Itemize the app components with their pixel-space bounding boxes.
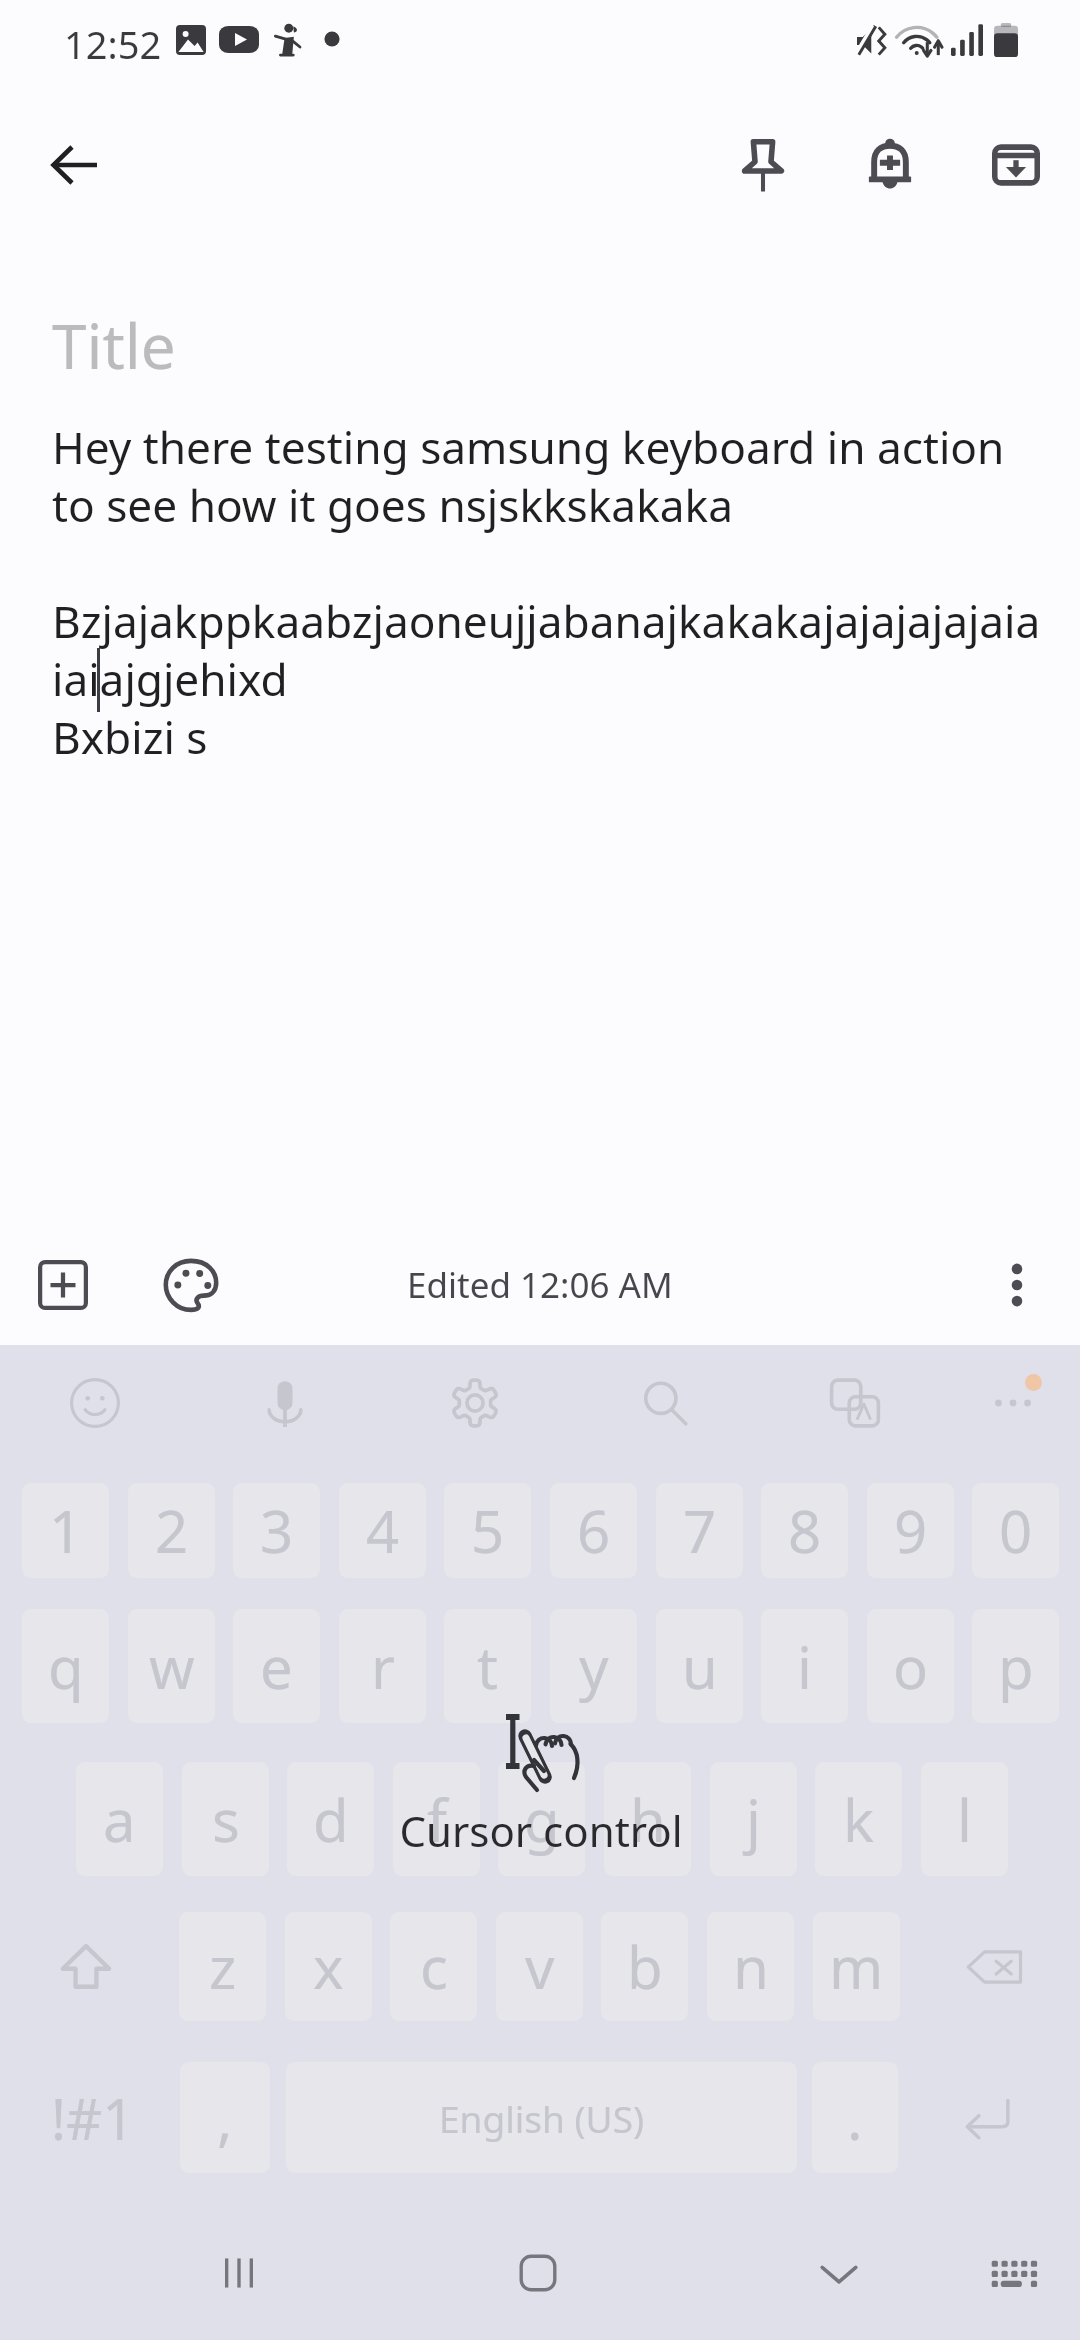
button[interactable]: g: [498, 1762, 585, 1876]
button[interactable]: f: [393, 1762, 480, 1876]
staticText: s: [212, 1780, 240, 1859]
button[interactable]: Enter: [919, 2062, 1055, 2173]
staticText: c: [420, 1927, 448, 2006]
button[interactable]: Archive: [968, 117, 1064, 213]
staticText: 1: [49, 1491, 83, 1570]
staticText: w: [149, 1627, 195, 1706]
button[interactable]: k: [815, 1762, 902, 1876]
staticText: Title: [52, 303, 176, 387]
button[interactable]: m: [813, 1912, 900, 2021]
staticText: ,: [217, 2078, 233, 2157]
staticText: Hey there testing samsung keyboard in ac…: [52, 417, 1052, 767]
button[interactable]: w: [128, 1609, 215, 1723]
button[interactable]: Hide keyboard: [779, 2213, 899, 2333]
staticText: 5: [471, 1491, 505, 1570]
button[interactable]: 7: [656, 1483, 743, 1578]
button[interactable]: j: [710, 1762, 797, 1876]
staticText: d: [313, 1780, 349, 1859]
button[interactable]: o: [867, 1609, 954, 1723]
staticText: 12:52: [64, 18, 162, 70]
staticText: h: [630, 1780, 666, 1859]
button[interactable]: Backspace: [935, 1912, 1055, 2021]
button[interactable]: q: [22, 1609, 109, 1723]
button[interactable]: More: [961, 1351, 1065, 1455]
button[interactable]: Home: [478, 2213, 598, 2333]
button[interactable]: 8: [761, 1483, 848, 1578]
staticText: f: [427, 1780, 447, 1859]
button[interactable]: Switch keyboard: [953, 2213, 1073, 2333]
staticText: l: [957, 1780, 972, 1859]
staticText: q: [48, 1627, 84, 1706]
button[interactable]: s: [182, 1762, 269, 1876]
staticText: k: [843, 1780, 874, 1859]
button[interactable]: x: [285, 1912, 372, 2021]
staticText: .: [847, 2078, 863, 2157]
button[interactable]: b: [601, 1912, 688, 2021]
button[interactable]: i: [761, 1609, 848, 1723]
button[interactable]: Settings: [423, 1351, 527, 1455]
button[interactable]: English (US): [286, 2062, 797, 2173]
button[interactable]: a: [76, 1762, 163, 1876]
button[interactable]: h: [604, 1762, 691, 1876]
button[interactable]: Add content: [20, 1242, 106, 1328]
staticText: j: [746, 1780, 761, 1859]
button[interactable]: t: [444, 1609, 531, 1723]
staticText: x: [313, 1927, 344, 2006]
button[interactable]: Back: [27, 118, 121, 212]
button[interactable]: 6: [550, 1483, 637, 1578]
staticText: u: [682, 1627, 718, 1706]
staticText: r: [371, 1627, 395, 1706]
staticText: 4: [366, 1491, 400, 1570]
button[interactable]: 0: [972, 1483, 1059, 1578]
staticText: Cursor control: [391, 1802, 691, 1859]
button[interactable]: More options: [974, 1242, 1060, 1328]
button[interactable]: Shift: [25, 1912, 146, 2021]
staticText: 0: [999, 1491, 1033, 1570]
button[interactable]: 1: [22, 1483, 109, 1578]
staticText: 3: [260, 1491, 294, 1570]
staticText: p: [998, 1627, 1034, 1706]
button[interactable]: !#1: [24, 2062, 162, 2173]
staticText: v: [525, 1927, 555, 2006]
button[interactable]: 4: [339, 1483, 426, 1578]
button[interactable]: Change colour: [148, 1242, 234, 1328]
button[interactable]: Recents: [179, 2213, 299, 2333]
staticText: t: [477, 1627, 498, 1706]
staticText: Edited 12:06 AM: [407, 1261, 673, 1309]
button[interactable]: 5: [444, 1483, 531, 1578]
button[interactable]: p: [972, 1609, 1059, 1723]
button[interactable]: Note body: [0, 270, 1080, 1225]
button[interactable]: e: [233, 1609, 320, 1723]
button[interactable]: u: [656, 1609, 743, 1723]
staticText: !#1: [51, 2080, 135, 2156]
button[interactable]: c: [390, 1912, 477, 2021]
staticText: a: [103, 1780, 136, 1859]
button[interactable]: Voice input: [233, 1351, 337, 1455]
button[interactable]: Emoji: [43, 1351, 147, 1455]
button[interactable]: Search: [613, 1351, 717, 1455]
button[interactable]: d: [287, 1762, 374, 1876]
staticText: English (US): [439, 2093, 645, 2143]
staticText: e: [260, 1627, 293, 1706]
button[interactable]: 2: [128, 1483, 215, 1578]
staticText: o: [893, 1627, 929, 1706]
button[interactable]: 9: [867, 1483, 954, 1578]
staticText: 9: [894, 1491, 928, 1570]
button[interactable]: r: [339, 1609, 426, 1723]
button[interactable]: z: [179, 1912, 266, 2021]
staticText: 2: [155, 1491, 189, 1570]
staticText: n: [733, 1927, 769, 2006]
button[interactable]: 3: [233, 1483, 320, 1578]
button[interactable]: v: [496, 1912, 583, 2021]
staticText: 8: [788, 1491, 822, 1570]
staticText: z: [209, 1927, 237, 2006]
button[interactable]: Translate: [803, 1351, 907, 1455]
button[interactable]: y: [550, 1609, 637, 1723]
button[interactable]: Add reminder: [842, 117, 938, 213]
button[interactable]: Pin note: [715, 117, 811, 213]
staticText: m: [829, 1927, 884, 2006]
button[interactable]: l: [921, 1762, 1008, 1876]
button[interactable]: n: [707, 1912, 794, 2021]
